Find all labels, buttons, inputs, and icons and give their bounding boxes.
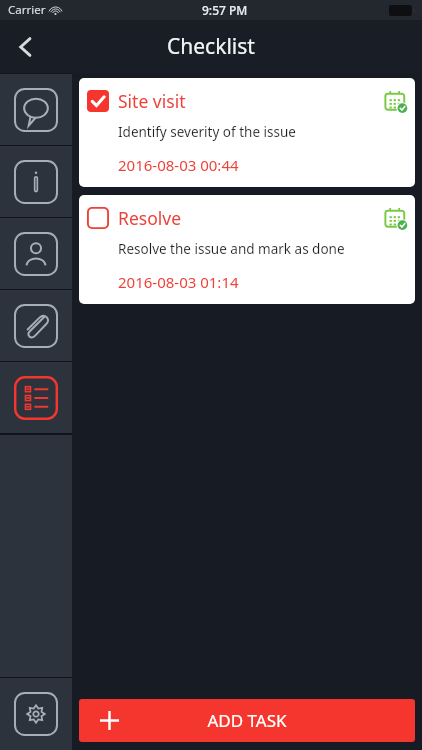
button[interactable]: Unchecked — [87, 207, 109, 229]
button[interactable]: Scheduled — [384, 207, 407, 230]
staticText: 2016-08-03 00:44 — [118, 155, 239, 175]
staticText: Checklist — [167, 32, 255, 61]
button[interactable]: Tab — [0, 218, 72, 289]
staticText: 2016-08-03 01:14 — [118, 272, 239, 292]
staticText: Carrier — [8, 2, 46, 18]
button[interactable]: Tab — [0, 74, 72, 145]
button[interactable]: ADD TASK — [79, 699, 415, 742]
staticText: 9:57 PM — [202, 2, 248, 18]
staticText: Resolve the issue and mark as done — [118, 240, 345, 258]
button[interactable]: Checked — [87, 90, 109, 112]
button[interactable]: Settings — [0, 678, 72, 750]
staticText: Site visit — [118, 89, 186, 113]
button[interactable]: Checklist tab — [0, 362, 72, 433]
staticText: Resolve — [118, 206, 181, 230]
staticText: ADD TASK — [207, 709, 287, 732]
button[interactable]: Unchecked — [79, 195, 415, 304]
button[interactable]: Checked — [79, 78, 415, 187]
button[interactable]: Back — [0, 21, 52, 73]
staticText: Identify severity of the issue — [118, 123, 296, 141]
button[interactable]: Tab — [0, 290, 72, 361]
button[interactable]: Tab — [0, 146, 72, 217]
button[interactable]: Scheduled — [384, 90, 407, 113]
